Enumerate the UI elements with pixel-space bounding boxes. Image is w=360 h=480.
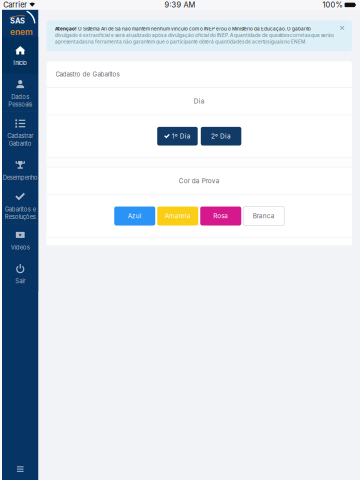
- staticText: Desempenho: [3, 174, 38, 181]
- button[interactable]: 1º Dia: [157, 127, 198, 146]
- button[interactable]: Sair: [2, 256, 38, 291]
- staticText: Gabaritos e: [5, 206, 36, 213]
- staticText: Cor da Prova: [179, 177, 220, 185]
- button[interactable]: Rosa: [200, 206, 241, 225]
- staticText: Dados: [11, 93, 29, 100]
- staticText: 1º Dia: [172, 132, 191, 140]
- staticText: 9:39 AM: [164, 0, 195, 9]
- staticText: Gabarito: [9, 140, 32, 147]
- staticText: Resoluções: [5, 213, 36, 220]
- staticText: Cadastrar: [7, 132, 33, 139]
- button[interactable]: Início: [2, 37, 38, 74]
- button[interactable]: Vídeos: [2, 224, 38, 256]
- button[interactable]: Gabaritos e: [2, 188, 38, 224]
- staticText: apresentadas na ferramenta não garantem …: [55, 39, 306, 44]
- button[interactable]: Dados: [2, 74, 38, 112]
- staticText: enem: [10, 27, 33, 37]
- button[interactable]: Menu: [2, 458, 38, 480]
- staticText: Azul: [128, 212, 142, 220]
- staticText: 2º Dia: [211, 132, 231, 140]
- button[interactable]: Desempenho: [2, 153, 38, 188]
- button[interactable]: Branca: [243, 206, 284, 225]
- button[interactable]: 2º Dia: [201, 127, 241, 146]
- button[interactable]: Azul: [114, 206, 155, 225]
- staticText: Vídeos: [11, 244, 30, 251]
- staticText: Sair: [15, 278, 25, 285]
- staticText: ×: [339, 22, 345, 33]
- button[interactable]: Fechar aviso: [337, 22, 347, 32]
- button[interactable]: Cadastrar: [2, 112, 38, 153]
- staticText: Amarela: [165, 212, 191, 220]
- staticText: Dia: [194, 97, 205, 105]
- staticText: 100%: [323, 0, 343, 9]
- staticText: Atenção! O Sistema Ari de Sá não mantém …: [55, 26, 311, 32]
- staticText: Pessoais: [8, 101, 32, 108]
- staticText: Cadastro de Gabaritos: [55, 70, 119, 78]
- staticText: Branca: [253, 212, 275, 220]
- staticText: Carrier: [3, 0, 27, 9]
- staticText: divulgado é extraoficial e será atualiza…: [55, 32, 334, 38]
- staticText: SAS: [10, 16, 25, 25]
- staticText: Início: [13, 59, 27, 66]
- button[interactable]: Amarela: [157, 206, 198, 225]
- staticText: Rosa: [213, 212, 228, 220]
